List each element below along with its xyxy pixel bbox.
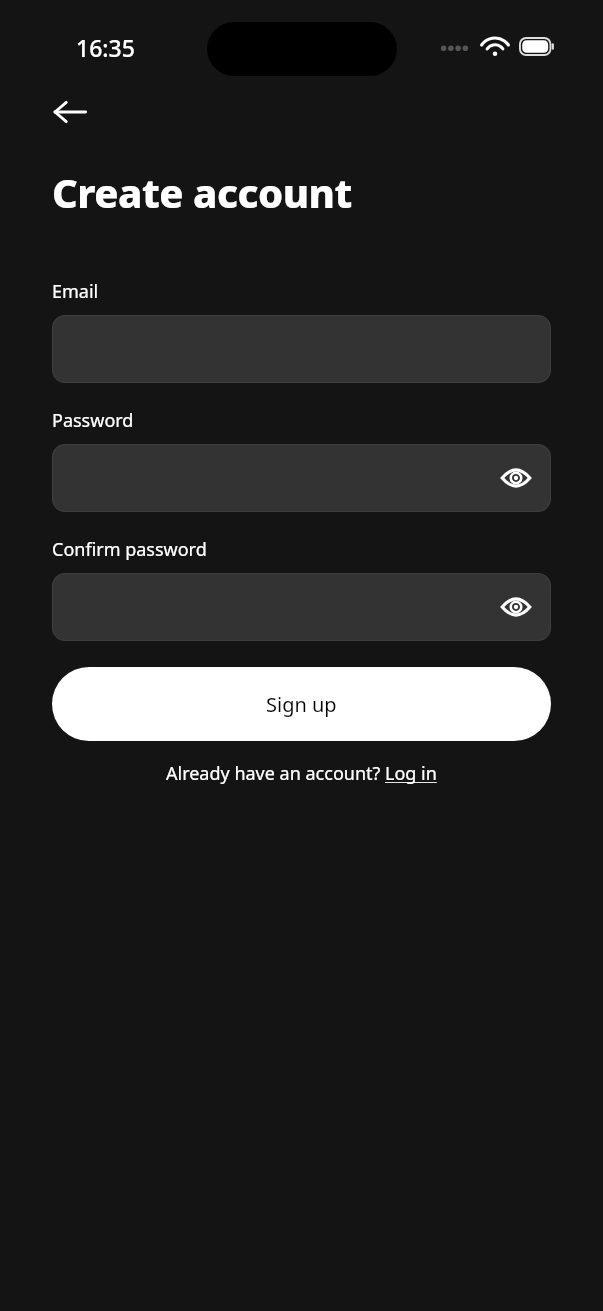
staticText: Email xyxy=(52,279,99,304)
button[interactable]: Password input xyxy=(52,444,551,512)
button[interactable]: Sign up xyxy=(52,667,551,741)
staticText: 16:35 xyxy=(76,32,135,63)
button[interactable]: Show password xyxy=(494,585,538,629)
button[interactable]: Confirm password input xyxy=(52,573,551,641)
staticText: Password xyxy=(52,408,134,433)
button[interactable]: Back xyxy=(44,86,96,138)
staticText: Confirm password xyxy=(52,537,207,562)
staticText: Already have an account? Log in xyxy=(166,761,437,786)
button[interactable]: Already have an account? Log in xyxy=(52,761,551,786)
button[interactable]: Show password xyxy=(494,456,538,500)
staticText: Sign up xyxy=(266,691,337,718)
staticText: Create account xyxy=(52,165,352,219)
